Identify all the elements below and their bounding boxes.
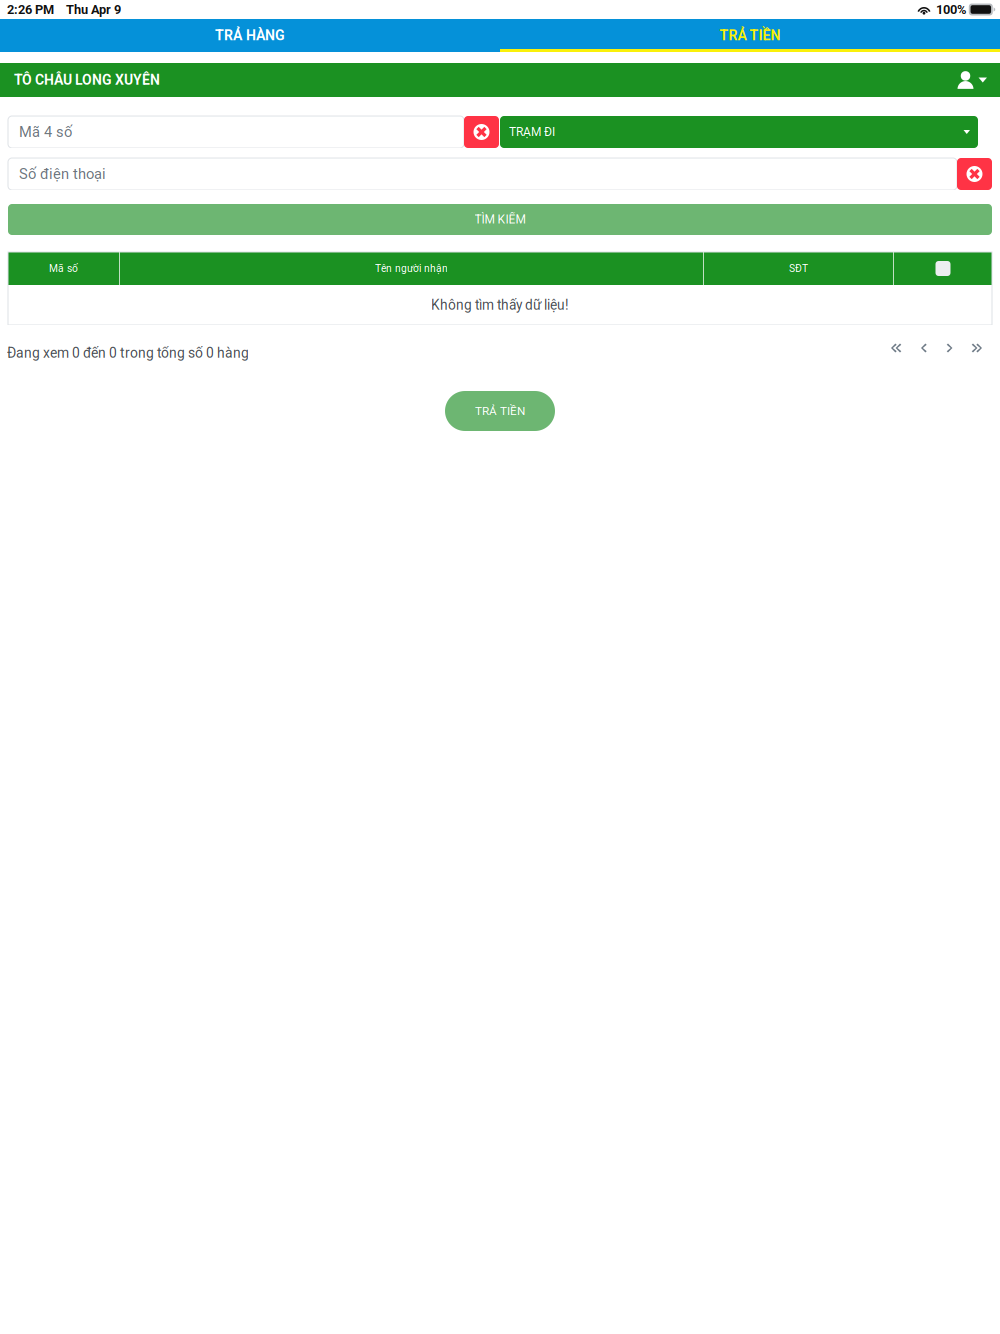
button[interactable]: TÌM KIẾM <box>8 204 992 235</box>
button[interactable]: Previous page <box>910 337 937 359</box>
staticText: TRẢ HÀNG <box>215 27 285 44</box>
button[interactable]: TRẢ HÀNG <box>0 19 500 52</box>
staticText: SĐT <box>789 262 808 274</box>
button[interactable]: Select all <box>894 252 992 285</box>
staticText: 100% <box>936 2 966 17</box>
button[interactable]: First page <box>882 337 910 359</box>
staticText: TÌM KIẾM <box>474 212 525 227</box>
button[interactable]: TRẢ TIỀN <box>445 391 555 431</box>
button[interactable]: Clear code <box>464 116 499 148</box>
button[interactable]: Next page <box>937 337 964 359</box>
button[interactable]: TRẠM ĐI <box>500 116 978 148</box>
button[interactable]: Last page <box>964 337 992 359</box>
staticText: TÔ CHÂU LONG XUYÊN <box>14 72 160 88</box>
staticText: TRẢ TIỀN <box>719 27 780 44</box>
staticText: Số điện thoại <box>19 165 106 183</box>
staticText: Tên người nhận <box>375 262 448 274</box>
staticText: TRẢ TIỀN <box>475 404 525 418</box>
staticText: Không tìm thấy dữ liệu! <box>431 297 569 313</box>
staticText: Mã 4 số <box>19 123 72 141</box>
staticText: Thu Apr 9 <box>66 2 121 17</box>
staticText: 2:26 PM <box>7 2 54 17</box>
staticText: TRẠM ĐI <box>509 125 555 139</box>
staticText: Đang xem 0 đến 0 trong tổng số 0 hàng <box>7 345 249 361</box>
button[interactable]: Account menu <box>949 63 995 97</box>
button[interactable]: Clear phone <box>957 158 992 190</box>
staticText: Mã số <box>49 262 78 274</box>
button[interactable]: TRẢ TIỀN <box>500 19 1000 52</box>
